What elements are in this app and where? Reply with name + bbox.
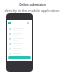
staticText: Online submission [19,3,46,7]
button[interactable] [9,37,30,41]
button[interactable] [9,42,30,46]
button[interactable] [9,52,30,56]
button[interactable] [9,32,30,36]
button[interactable] [9,27,30,31]
button[interactable]: Filter [8,21,29,24]
staticText: directly in the mobile application [4,8,60,13]
button[interactable] [9,47,30,51]
button[interactable]: Submit [8,56,31,59]
